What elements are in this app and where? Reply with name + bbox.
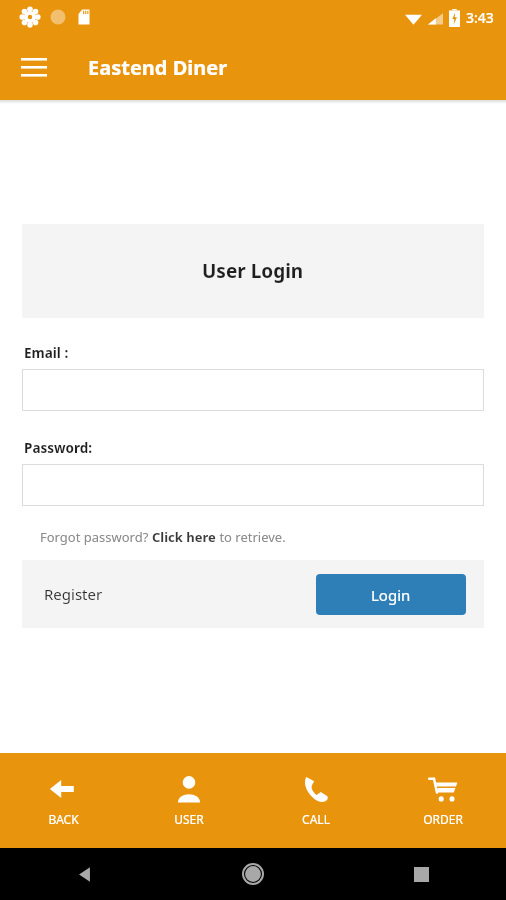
staticText: BACK bbox=[48, 811, 79, 827]
staticText: Forgot password? bbox=[40, 528, 152, 546]
button[interactable]: Home bbox=[168, 848, 337, 900]
button[interactable]: Open navigation menu bbox=[10, 43, 58, 91]
staticText: User Login bbox=[202, 258, 304, 284]
button[interactable] bbox=[22, 369, 484, 411]
button[interactable]: CALL bbox=[252, 768, 379, 833]
button[interactable]: Recent apps bbox=[337, 848, 506, 900]
staticText: CALL bbox=[302, 811, 330, 827]
staticText: 3:43 bbox=[466, 8, 494, 27]
button[interactable] bbox=[22, 464, 484, 506]
staticText: Eastend Diner bbox=[88, 54, 228, 81]
staticText: Register bbox=[44, 584, 103, 604]
button[interactable]: Back bbox=[0, 848, 168, 900]
staticText: Password: bbox=[24, 439, 93, 457]
button[interactable]: Forgot password? bbox=[40, 528, 286, 546]
button[interactable]: BACK bbox=[0, 768, 126, 833]
staticText: USER bbox=[174, 811, 204, 827]
button[interactable]: USER bbox=[126, 768, 252, 833]
button[interactable]: ORDER bbox=[379, 768, 506, 833]
button[interactable]: Login bbox=[316, 574, 466, 615]
staticText: to retrieve. bbox=[216, 528, 286, 546]
staticText: ORDER bbox=[423, 811, 463, 827]
staticText: Login bbox=[371, 585, 411, 605]
button[interactable]: Register bbox=[38, 576, 109, 612]
staticText: Click here bbox=[152, 528, 216, 546]
staticText: Email : bbox=[24, 344, 69, 362]
